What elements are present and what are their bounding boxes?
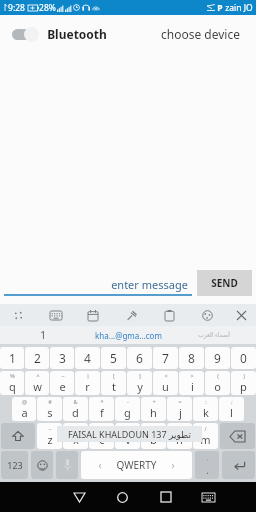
button[interactable]: Bluetooth — [12, 22, 107, 46]
button[interactable]: ( — [205, 371, 230, 395]
staticText: [ — [113, 372, 115, 379]
button[interactable]: & — [63, 397, 88, 421]
button[interactable]: 8 — [179, 347, 204, 369]
button[interactable]: 7 — [153, 347, 178, 369]
staticText: t — [112, 379, 116, 394]
button[interactable]: * — [89, 397, 114, 421]
button[interactable]: $ — [141, 423, 166, 449]
button[interactable]: Enter — [222, 451, 255, 479]
button[interactable]: أسماء العرب — [171, 326, 256, 344]
button[interactable]: kha...@gma...com — [86, 326, 171, 344]
button[interactable]: choose device — [157, 22, 244, 46]
staticText: < — [164, 372, 168, 379]
button[interactable]: 4 — [75, 347, 100, 369]
button[interactable]: 1 — [0, 347, 24, 369]
staticText: b — [150, 432, 157, 447]
button[interactable]: Back — [57, 482, 101, 512]
staticText: \ — [75, 425, 78, 432]
staticText: l — [230, 405, 233, 420]
button[interactable]: / — [193, 423, 218, 449]
staticText: } — [127, 425, 130, 432]
staticText: / — [204, 425, 207, 432]
button[interactable]: = — [167, 397, 192, 421]
staticText: u — [162, 379, 169, 394]
staticText: * — [100, 398, 104, 405]
button[interactable]: Recents — [144, 482, 187, 512]
button[interactable]: ~ — [37, 423, 62, 449]
staticText: j — [179, 405, 182, 420]
button[interactable]: [ — [101, 371, 126, 395]
button[interactable]: 2 — [25, 347, 49, 369]
button[interactable]: % — [0, 371, 24, 395]
button[interactable]: Close — [226, 304, 256, 326]
staticText: k — [203, 405, 209, 420]
button[interactable]: , — [195, 451, 219, 479]
button[interactable]: Backspace — [220, 423, 255, 449]
staticText: x — [73, 432, 79, 447]
button[interactable]: Translate — [0, 304, 37, 326]
button[interactable]: enter message — [4, 270, 192, 296]
button[interactable]: 6 — [127, 347, 152, 369]
staticText: ( — [217, 372, 219, 379]
button[interactable]: Keyboard — [187, 482, 230, 512]
button[interactable]: 5 — [101, 347, 126, 369]
staticText: ‹ — [98, 458, 102, 472]
button[interactable]: Calendar — [74, 304, 112, 326]
staticText: enter message — [111, 277, 188, 292]
staticText: d — [72, 405, 79, 420]
button[interactable]: ^ — [25, 371, 49, 395]
button[interactable]: Clipboard — [150, 304, 188, 326]
button[interactable]: ‹ — [81, 451, 192, 479]
button[interactable]: | — [75, 371, 100, 395]
button[interactable]: # — [37, 397, 62, 421]
button[interactable]: - — [115, 397, 140, 421]
staticText: f — [100, 405, 104, 420]
button[interactable]: \ — [63, 423, 88, 449]
staticText: i — [191, 379, 194, 394]
button[interactable]: SEND — [197, 270, 252, 296]
staticText: : — [205, 398, 207, 405]
staticText: c — [99, 432, 105, 447]
button[interactable]: } — [115, 423, 140, 449]
button[interactable]: ) — [231, 371, 256, 395]
staticText: kha...@gma...com — [95, 330, 162, 341]
button[interactable]: 123 — [1, 451, 28, 479]
button[interactable]: Shift — [1, 423, 35, 449]
button[interactable]: Sticker — [112, 304, 150, 326]
button[interactable]: 1 — [0, 326, 86, 344]
button[interactable]: ~ — [50, 371, 74, 395]
button[interactable]: ; — [219, 397, 244, 421]
button[interactable]: Emoji — [31, 451, 53, 479]
staticText: أسماء العرب — [198, 331, 230, 339]
button[interactable]: ] — [127, 371, 152, 395]
button[interactable]: 3 — [50, 347, 74, 369]
button[interactable]: Home — [101, 482, 144, 512]
button[interactable]: : — [193, 397, 218, 421]
staticText: r — [85, 379, 90, 394]
staticText: , — [207, 453, 209, 463]
staticText: ) — [243, 372, 245, 379]
staticText: QWERTY — [116, 458, 157, 472]
button[interactable]: < — [153, 371, 178, 395]
button[interactable]: 9 — [205, 347, 230, 369]
staticText: 9:28 — [8, 2, 25, 14]
button[interactable]: 0 — [231, 347, 256, 369]
staticText: 28% — [39, 2, 56, 14]
staticText: e — [59, 379, 66, 394]
button[interactable]: £ — [167, 423, 192, 449]
staticText: & — [73, 398, 78, 405]
staticText: 0 — [240, 350, 247, 366]
staticText: 4 — [84, 350, 91, 366]
button[interactable]: > — [179, 371, 204, 395]
button[interactable]: + — [141, 397, 166, 421]
button[interactable]: { — [89, 423, 114, 449]
button[interactable]: @ — [12, 397, 36, 421]
button[interactable]: Settings — [188, 304, 226, 326]
staticText: h — [150, 405, 157, 420]
staticText: g — [124, 405, 131, 420]
button[interactable]: Voice input — [56, 451, 78, 479]
button[interactable]: Handwriting — [37, 304, 74, 326]
staticText: a — [21, 405, 28, 420]
staticText: ; — [231, 398, 233, 405]
staticText: | — [86, 372, 90, 379]
